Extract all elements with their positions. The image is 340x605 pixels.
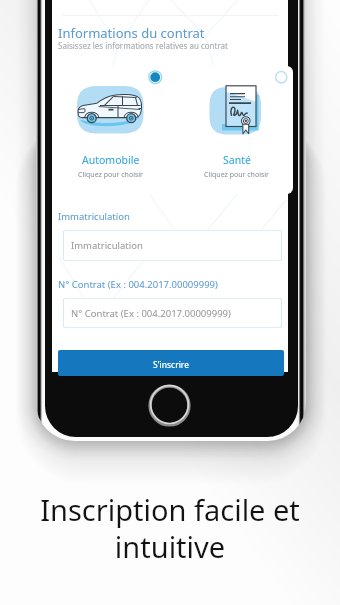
staticText: Cliquez pour choisir bbox=[204, 170, 270, 180]
staticText: Informations du contrat bbox=[58, 24, 205, 42]
button[interactable]: Automobile bbox=[55, 66, 167, 194]
staticText: Inscription facile et intuitive bbox=[0, 490, 340, 567]
staticText: Immatriculation bbox=[58, 210, 130, 223]
button[interactable]: S'inscrire bbox=[58, 350, 284, 376]
staticText: Automobile bbox=[82, 153, 140, 167]
staticText: Cliquez pour choisir bbox=[78, 170, 144, 180]
staticText: Santé bbox=[223, 153, 251, 167]
button[interactable]: N° Contrat (Ex : 004.2017.00009999) bbox=[63, 298, 282, 328]
staticText: Immatriculation bbox=[71, 239, 143, 252]
staticText: Saisissez les informations relatives au … bbox=[58, 40, 228, 51]
staticText: N° Contrat (Ex : 004.2017.00009999) bbox=[71, 307, 231, 320]
staticText: S'inscrire bbox=[58, 359, 284, 371]
button[interactable]: Immatriculation bbox=[63, 230, 282, 261]
button[interactable]: Santé bbox=[181, 66, 293, 194]
staticText: N° Contrat (Ex : 004.2017.00009999) bbox=[58, 278, 218, 291]
